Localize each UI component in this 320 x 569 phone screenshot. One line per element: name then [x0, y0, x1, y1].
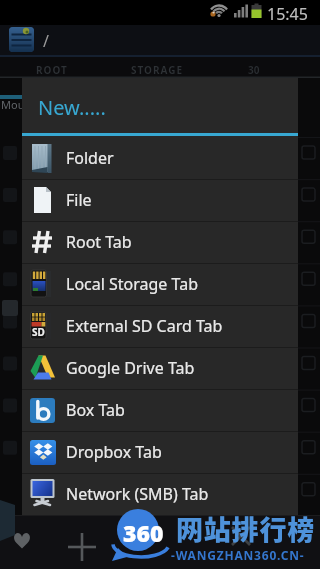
- button[interactable]: New.....: [22, 78, 298, 133]
- staticText: Local Storage Tab: [66, 273, 198, 295]
- button[interactable]: SD: [22, 305, 298, 347]
- staticText: Box Tab: [66, 399, 125, 421]
- staticText: STORAGE: [131, 63, 184, 77]
- button[interactable]: File: [22, 179, 298, 221]
- button[interactable]: [227, 522, 255, 550]
- staticText: Network (SMB) Tab: [66, 483, 209, 505]
- staticText: /: [43, 30, 49, 52]
- staticText: ROOT: [36, 63, 68, 77]
- staticText: Google Drive Tab: [66, 357, 195, 379]
- staticText: 360: [123, 517, 164, 548]
- staticText: 网站排行榜: [176, 509, 315, 548]
- staticText: Dropbox Tab: [66, 441, 162, 463]
- staticText: -WANGZHAN360.CN-: [171, 547, 305, 563]
- staticText: 15:45: [267, 3, 308, 25]
- staticText: 30: [248, 63, 260, 77]
- button[interactable]: Root Tab: [22, 221, 298, 263]
- button[interactable]: Network (SMB) Tab: [22, 473, 298, 515]
- button[interactable]: [68, 533, 96, 561]
- button[interactable]: [8, 526, 36, 554]
- staticText: New.....: [38, 94, 106, 121]
- button[interactable]: Folder: [22, 136, 298, 179]
- staticText: File: [66, 189, 92, 211]
- staticText: External SD Card Tab: [66, 315, 223, 337]
- button[interactable]: Google Drive Tab: [22, 347, 298, 389]
- button[interactable]: Box Tab: [22, 389, 298, 431]
- staticText: Root Tab: [66, 231, 132, 253]
- staticText: SD: [32, 325, 45, 339]
- staticText: Folder: [66, 147, 114, 169]
- button[interactable]: Dropbox Tab: [22, 431, 298, 473]
- button[interactable]: Local Storage Tab: [22, 263, 298, 305]
- staticText: Mou: [1, 97, 25, 112]
